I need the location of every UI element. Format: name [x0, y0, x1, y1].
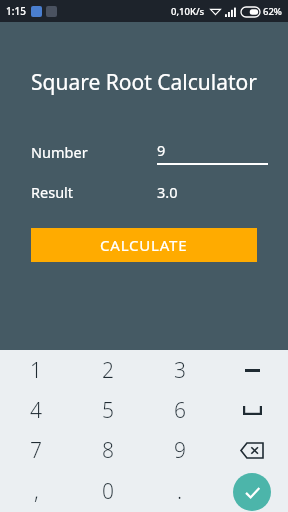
button[interactable]: 1 — [0, 350, 72, 390]
staticText: CALCULATE — [100, 235, 188, 255]
staticText: Number — [31, 142, 88, 162]
button[interactable]: 0 — [72, 471, 144, 512]
button[interactable]: Done — [216, 471, 288, 512]
button[interactable]: 8 — [72, 430, 144, 471]
button[interactable]: 2 — [72, 350, 144, 390]
staticText: 62% — [263, 5, 282, 18]
button[interactable]: CALCULATE — [31, 228, 257, 262]
staticText: . — [177, 477, 183, 506]
button[interactable]: Minus — [216, 350, 288, 390]
staticText: 8 — [102, 436, 114, 465]
button[interactable]: 6 — [144, 390, 216, 430]
staticText: 5 — [102, 396, 114, 425]
staticText: 3 — [174, 356, 186, 385]
staticText: 0,10K/s — [171, 5, 205, 18]
button[interactable]: 7 — [0, 430, 72, 471]
staticText: Square Root Calculator — [0, 68, 288, 97]
button[interactable]: 9 — [144, 430, 216, 471]
staticText: 3.0 — [157, 182, 178, 202]
staticText: 2 — [102, 356, 114, 385]
button[interactable]: . — [144, 471, 216, 512]
button[interactable]: Space — [216, 390, 288, 430]
staticText: Result — [31, 182, 74, 202]
staticText: 1:15 — [6, 4, 26, 18]
button[interactable]: , — [0, 471, 72, 512]
staticText: 1 — [30, 356, 42, 385]
button[interactable]: 3 — [144, 350, 216, 390]
staticText: 9 — [157, 140, 166, 160]
button[interactable]: 5 — [72, 390, 144, 430]
button[interactable]: Backspace — [216, 430, 288, 471]
staticText: 9 — [174, 436, 186, 465]
staticText: 6 — [174, 396, 186, 425]
staticText: , — [34, 477, 39, 506]
staticText: 7 — [30, 436, 42, 465]
button[interactable]: 4 — [0, 390, 72, 430]
staticText: 0 — [102, 477, 114, 506]
staticText: 4 — [30, 396, 42, 425]
